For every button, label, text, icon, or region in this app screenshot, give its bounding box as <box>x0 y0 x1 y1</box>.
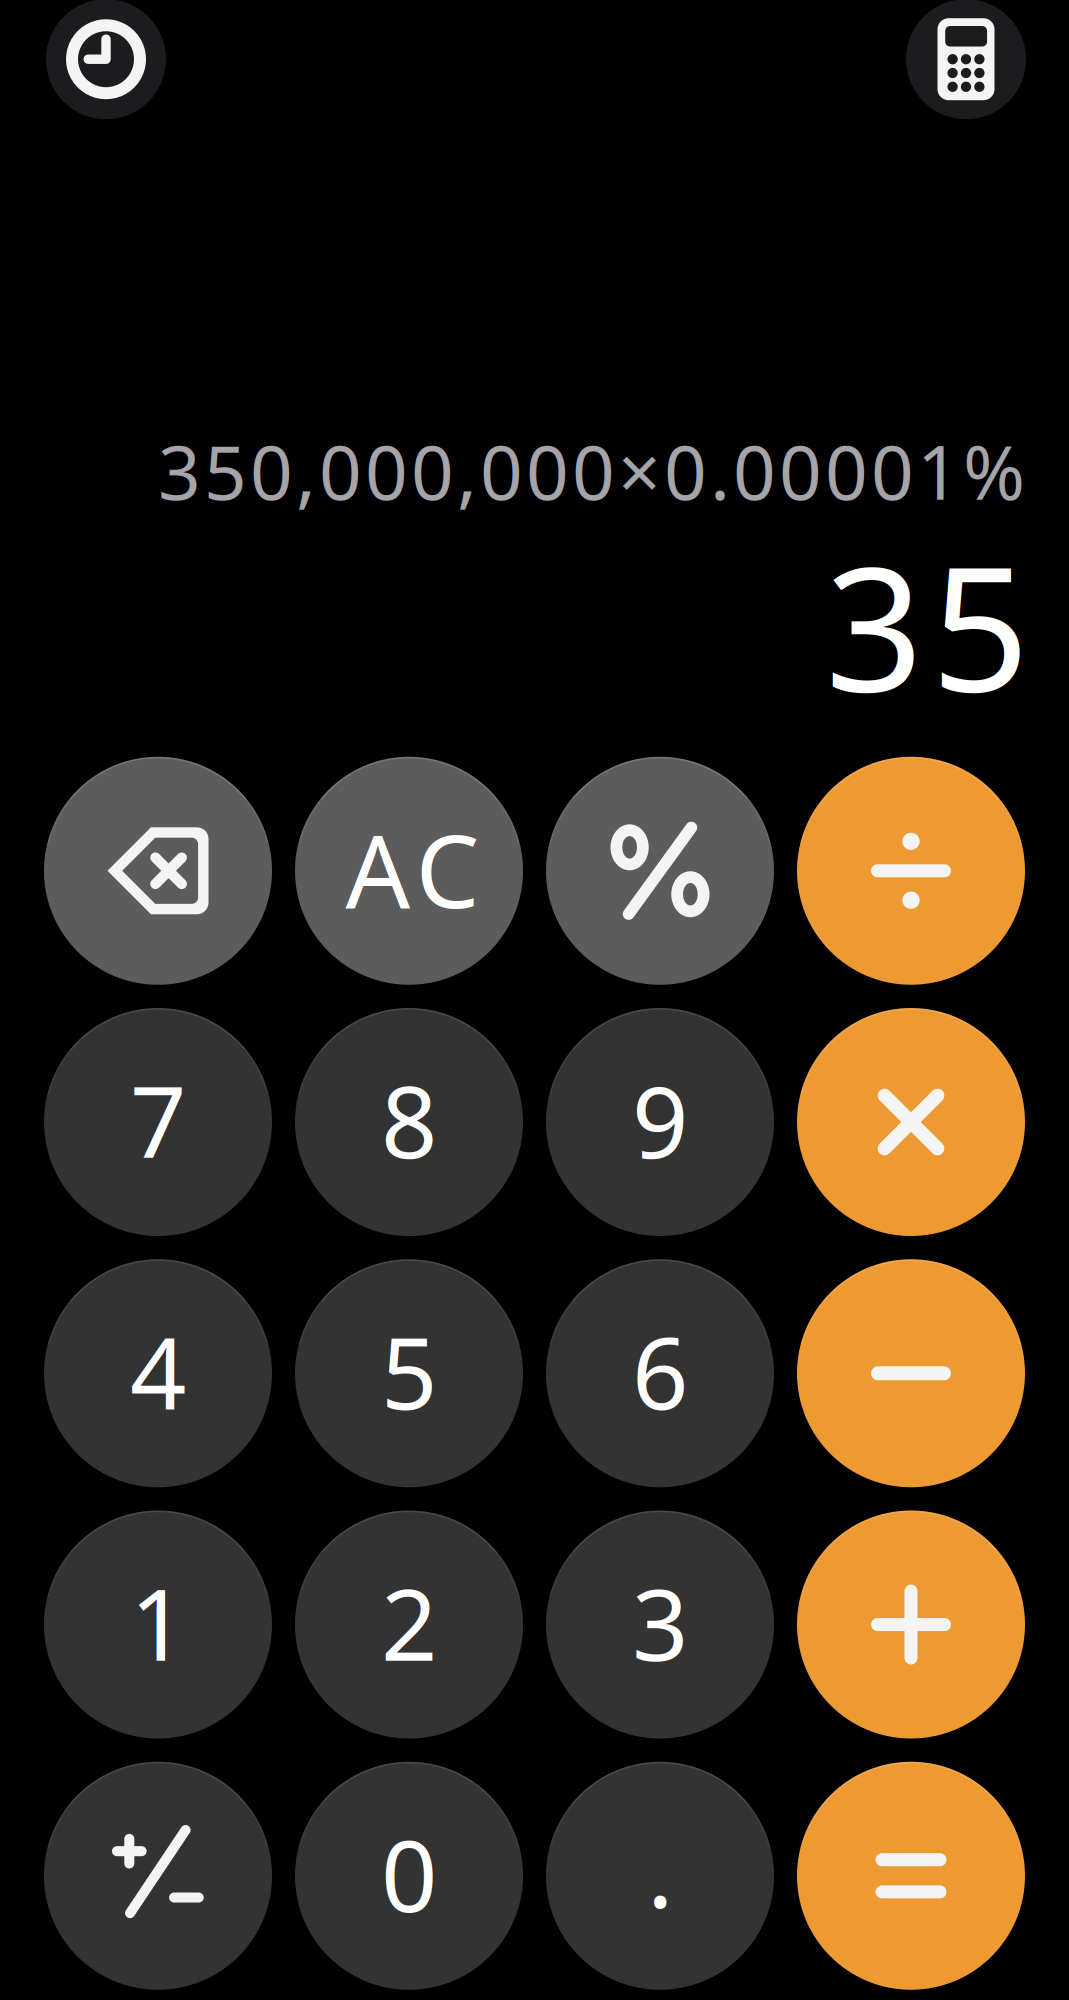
button[interactable]: 3 <box>546 1510 774 1738</box>
button[interactable]: Plus <box>797 1510 1025 1738</box>
button[interactable]: 2 <box>295 1510 523 1738</box>
button[interactable]: Multiply <box>797 1008 1025 1236</box>
button[interactable]: Divide <box>797 757 1025 985</box>
button[interactable]: Equals <box>797 1762 1025 1990</box>
staticText: 9 <box>632 1054 688 1185</box>
button[interactable]: 5 <box>295 1259 523 1487</box>
staticText: 6 <box>632 1306 688 1437</box>
button[interactable]: Minus <box>797 1259 1025 1487</box>
button[interactable]: 0 <box>295 1762 523 1990</box>
staticText: 2 <box>381 1557 437 1688</box>
button[interactable]: 7 <box>44 1008 272 1236</box>
button[interactable]: 6 <box>546 1259 774 1487</box>
button[interactable]: . <box>546 1762 774 1990</box>
button[interactable]: 9 <box>546 1008 774 1236</box>
staticText: 35 <box>825 510 1029 739</box>
staticText: 0 <box>381 1808 437 1939</box>
staticText: 3 <box>632 1557 688 1688</box>
staticText: 8 <box>381 1054 437 1185</box>
staticText: 5 <box>381 1306 437 1437</box>
button[interactable]: 4 <box>44 1259 272 1487</box>
button[interactable]: 8 <box>295 1008 523 1236</box>
staticText: AC <box>345 801 479 936</box>
staticText: 1 <box>130 1557 186 1688</box>
button[interactable]: History <box>46 0 166 119</box>
button[interactable]: Percent <box>546 757 774 985</box>
button[interactable]: AC <box>295 757 523 985</box>
button[interactable]: Delete <box>44 757 272 985</box>
staticText: . <box>647 1804 673 1935</box>
staticText: 7 <box>130 1054 186 1185</box>
button[interactable]: 1 <box>44 1510 272 1738</box>
staticText: 4 <box>130 1306 186 1437</box>
staticText: 350,000,000×0.00001% <box>158 421 1025 520</box>
button[interactable]: Toggle sign <box>44 1762 272 1990</box>
button[interactable]: Calculator <box>906 0 1026 119</box>
